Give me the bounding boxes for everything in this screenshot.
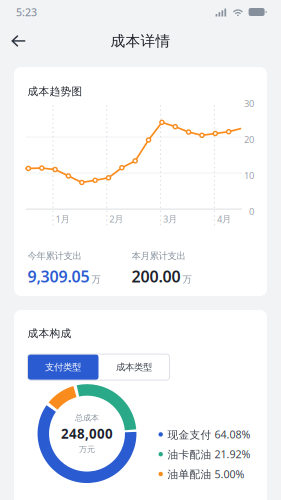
staticText: 2月 — [109, 213, 123, 225]
staticText: 4月 — [217, 213, 231, 225]
button[interactable]: 支付类型 — [27, 354, 98, 380]
staticText: 总成本 — [75, 413, 99, 423]
staticText: 成本构成 — [27, 327, 71, 340]
button[interactable]: 成本类型 — [98, 354, 169, 380]
staticText: 9,309.05 — [27, 266, 89, 287]
staticText: 万 — [182, 274, 191, 285]
staticText: 1月 — [55, 213, 69, 225]
staticText: 油单配油 5.00% — [167, 467, 244, 481]
staticText: 成本详情 — [110, 32, 170, 50]
staticText: 30 — [244, 97, 254, 109]
staticText: 万 — [91, 274, 100, 285]
staticText: 成本类型 — [116, 361, 152, 373]
staticText: 油卡配油 21.92% — [167, 447, 250, 461]
staticText: 今年累计支出 — [27, 250, 81, 262]
staticText: 本月累计支出 — [131, 250, 185, 262]
button[interactable]: 返回 — [2, 24, 34, 58]
staticText: 10 — [244, 169, 254, 181]
staticText: 3月 — [163, 213, 177, 225]
staticText: 20 — [244, 133, 254, 145]
staticText: 支付类型 — [45, 361, 81, 373]
staticText: 5:23 — [16, 5, 37, 19]
staticText: 0 — [249, 205, 254, 217]
staticText: 现金支付 64.08% — [167, 427, 250, 441]
staticText: 万元 — [79, 444, 95, 454]
staticText: 200.00 — [131, 266, 180, 287]
staticText: 248,000 — [61, 425, 113, 442]
staticText: 成本趋势图 — [27, 85, 82, 98]
